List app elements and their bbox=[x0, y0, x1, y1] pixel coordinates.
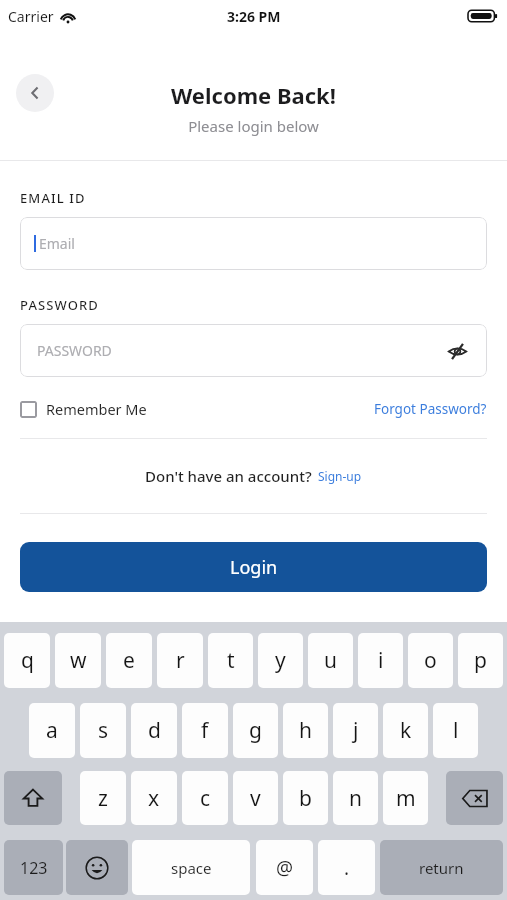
button[interactable]: Show password bbox=[443, 337, 471, 365]
button[interactable]: Back bbox=[16, 74, 54, 112]
staticText: @ bbox=[276, 855, 294, 881]
button[interactable]: c bbox=[182, 771, 228, 825]
button[interactable]: Email bbox=[20, 217, 487, 270]
staticText: Login bbox=[230, 555, 278, 580]
staticText: o bbox=[424, 646, 437, 675]
staticText: . bbox=[344, 855, 350, 881]
button[interactable]: v bbox=[233, 771, 278, 825]
button[interactable]: m bbox=[383, 771, 428, 825]
staticText: m bbox=[396, 784, 416, 813]
staticText: v bbox=[250, 784, 261, 813]
staticText: Remember Me bbox=[46, 399, 147, 419]
button[interactable]: r bbox=[157, 633, 203, 688]
staticText: Sign-up bbox=[318, 468, 362, 484]
staticText: u bbox=[324, 646, 337, 675]
button[interactable]: Period bbox=[318, 840, 375, 895]
staticText: y bbox=[275, 646, 286, 675]
button[interactable]: PASSWORD bbox=[20, 324, 487, 377]
staticText: Don't have an account? bbox=[145, 466, 312, 486]
staticText: Email bbox=[39, 234, 75, 253]
button[interactable]: g bbox=[233, 703, 278, 758]
button[interactable]: o bbox=[408, 633, 453, 688]
button[interactable]: i bbox=[358, 633, 403, 688]
button[interactable]: w bbox=[55, 633, 101, 688]
staticText: PASSWORD bbox=[37, 341, 112, 360]
staticText: i bbox=[378, 646, 384, 675]
staticText: s bbox=[98, 716, 109, 745]
button[interactable]: Login bbox=[20, 542, 487, 592]
staticText: Please login below bbox=[188, 116, 319, 136]
button[interactable]: Return bbox=[380, 840, 503, 895]
button[interactable]: At sign bbox=[256, 840, 313, 895]
button[interactable]: y bbox=[258, 633, 303, 688]
staticText: b bbox=[299, 784, 312, 813]
staticText: return bbox=[419, 858, 464, 878]
button[interactable]: Backspace bbox=[446, 771, 503, 825]
button[interactable]: j bbox=[333, 703, 378, 758]
button[interactable]: Emoji bbox=[66, 840, 128, 895]
staticText: c bbox=[200, 784, 211, 813]
staticText: Welcome Back! bbox=[171, 80, 336, 110]
button[interactable]: h bbox=[283, 703, 328, 758]
staticText: r bbox=[176, 646, 185, 675]
staticText: PASSWORD bbox=[20, 296, 99, 314]
button[interactable]: k bbox=[383, 703, 428, 758]
staticText: h bbox=[299, 716, 312, 745]
button[interactable]: Shift bbox=[4, 771, 62, 825]
button[interactable]: u bbox=[308, 633, 353, 688]
button[interactable]: t bbox=[208, 633, 253, 688]
staticText: Forgot Password? bbox=[374, 400, 487, 418]
staticText: t bbox=[227, 646, 235, 675]
button[interactable]: n bbox=[333, 771, 378, 825]
button[interactable]: Space bbox=[132, 840, 250, 895]
staticText: j bbox=[353, 716, 359, 745]
staticText: w bbox=[70, 646, 87, 675]
staticText: EMAIL ID bbox=[20, 189, 86, 207]
staticText: d bbox=[148, 716, 161, 745]
staticText: p bbox=[474, 646, 487, 675]
button[interactable]: Forgot Password? bbox=[374, 400, 487, 418]
staticText: f bbox=[201, 716, 209, 745]
button[interactable]: e bbox=[106, 633, 152, 688]
staticText: q bbox=[21, 646, 34, 675]
staticText: a bbox=[46, 716, 58, 745]
button[interactable]: a bbox=[29, 703, 75, 758]
staticText: n bbox=[349, 784, 362, 813]
button[interactable]: b bbox=[283, 771, 328, 825]
staticText: 3:26 PM bbox=[227, 7, 281, 26]
button[interactable]: f bbox=[182, 703, 228, 758]
staticText: e bbox=[123, 646, 135, 675]
staticText: l bbox=[453, 716, 459, 745]
button[interactable]: Numbers bbox=[4, 840, 63, 895]
staticText: Carrier bbox=[8, 7, 54, 26]
staticText: space bbox=[171, 858, 212, 878]
staticText: x bbox=[148, 784, 160, 813]
button[interactable]: s bbox=[80, 703, 126, 758]
button[interactable]: p bbox=[458, 633, 503, 688]
button[interactable]: l bbox=[433, 703, 478, 758]
button[interactable]: x bbox=[131, 771, 177, 825]
staticText: g bbox=[249, 716, 262, 745]
button[interactable]: z bbox=[80, 771, 126, 825]
staticText: k bbox=[400, 716, 412, 745]
staticText: 123 bbox=[20, 857, 48, 879]
button[interactable]: Remember Me bbox=[20, 399, 147, 419]
staticText: z bbox=[98, 784, 108, 813]
button[interactable]: Sign-up bbox=[318, 468, 362, 484]
button[interactable]: q bbox=[4, 633, 50, 688]
button[interactable]: d bbox=[131, 703, 177, 758]
